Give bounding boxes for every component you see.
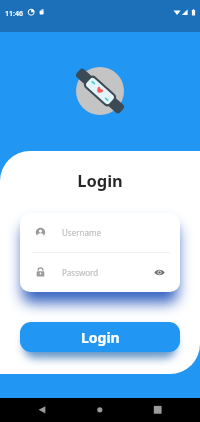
staticText: Login — [81, 328, 120, 347]
button[interactable]: Username — [20, 213, 180, 252]
staticText: Password — [62, 267, 99, 278]
button[interactable]: Recents — [133, 398, 200, 422]
button[interactable]: Show password — [153, 266, 166, 279]
button[interactable]: Home — [66, 398, 133, 422]
button[interactable]: Login — [20, 322, 180, 352]
staticText: Username — [62, 227, 101, 238]
button[interactable]: Password — [20, 253, 180, 292]
staticText: 11:46 — [5, 9, 23, 19]
button[interactable]: Back — [0, 398, 66, 422]
staticText: Login — [0, 169, 200, 191]
